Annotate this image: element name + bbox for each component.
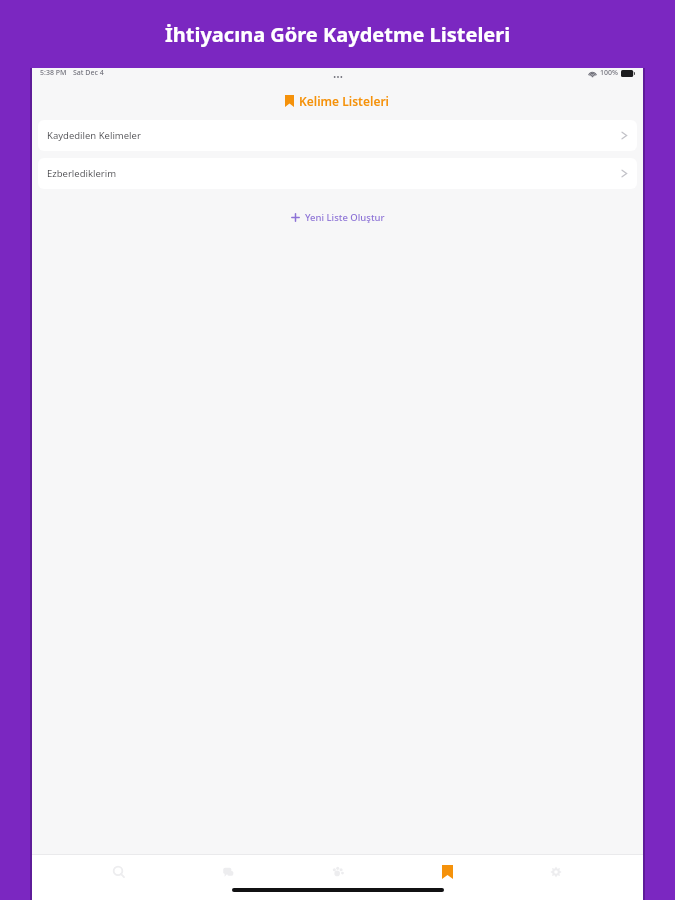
button[interactable]: Lists [425, 855, 469, 889]
staticText: Kelime Listeleri [299, 93, 390, 109]
button[interactable]: Yeni Liste Oluştur [32, 205, 643, 229]
button[interactable]: Kaydedilen Kelimeler [38, 120, 637, 151]
staticText: Kaydedilen Kelimeler [47, 129, 141, 142]
staticText: Ezberlediklerim [47, 167, 117, 180]
staticText: Yeni Liste Oluştur [305, 211, 385, 224]
staticText: 5:38 PM [40, 68, 67, 78]
button[interactable]: Ezberlediklerim [38, 158, 637, 189]
button[interactable]: Search [97, 855, 141, 889]
button[interactable]: Practice [316, 855, 360, 889]
button[interactable]: Settings [534, 855, 578, 889]
staticText: İhtiyacına Göre Kaydetme Listeleri [165, 21, 511, 48]
staticText: 100% [600, 68, 618, 78]
staticText: Sat Dec 4 [73, 68, 104, 78]
button[interactable]: Messages [206, 855, 250, 889]
